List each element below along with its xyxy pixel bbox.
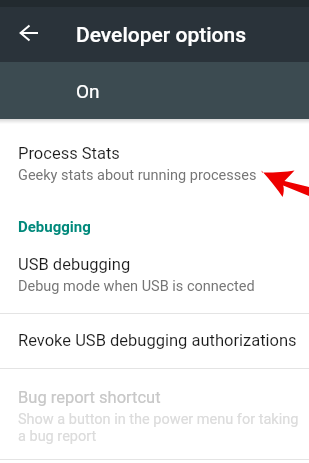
- button[interactable]: On: [0, 62, 309, 119]
- button[interactable]: Bug report shortcut: [0, 369, 309, 459]
- staticText: Geeky stats about running processes: [18, 167, 257, 184]
- button[interactable]: USB debugging: [0, 255, 309, 313]
- staticText: On: [76, 80, 100, 102]
- staticText: Debugging: [18, 218, 91, 236]
- staticText: Debug mode when USB is connected: [18, 278, 255, 295]
- button[interactable]: Revoke USB debugging authorizations: [0, 314, 309, 368]
- button[interactable]: Navigate up: [0, 7, 58, 62]
- staticText: Developer options: [76, 23, 247, 48]
- staticText: Process Stats: [18, 144, 120, 163]
- button[interactable]: Process Stats: [0, 119, 309, 201]
- staticText: USB debugging: [18, 255, 131, 274]
- staticText: Show a button in the power menu for taki…: [18, 411, 300, 445]
- staticText: Revoke USB debugging authorizations: [18, 331, 297, 350]
- staticText: Bug report shortcut: [18, 388, 161, 407]
